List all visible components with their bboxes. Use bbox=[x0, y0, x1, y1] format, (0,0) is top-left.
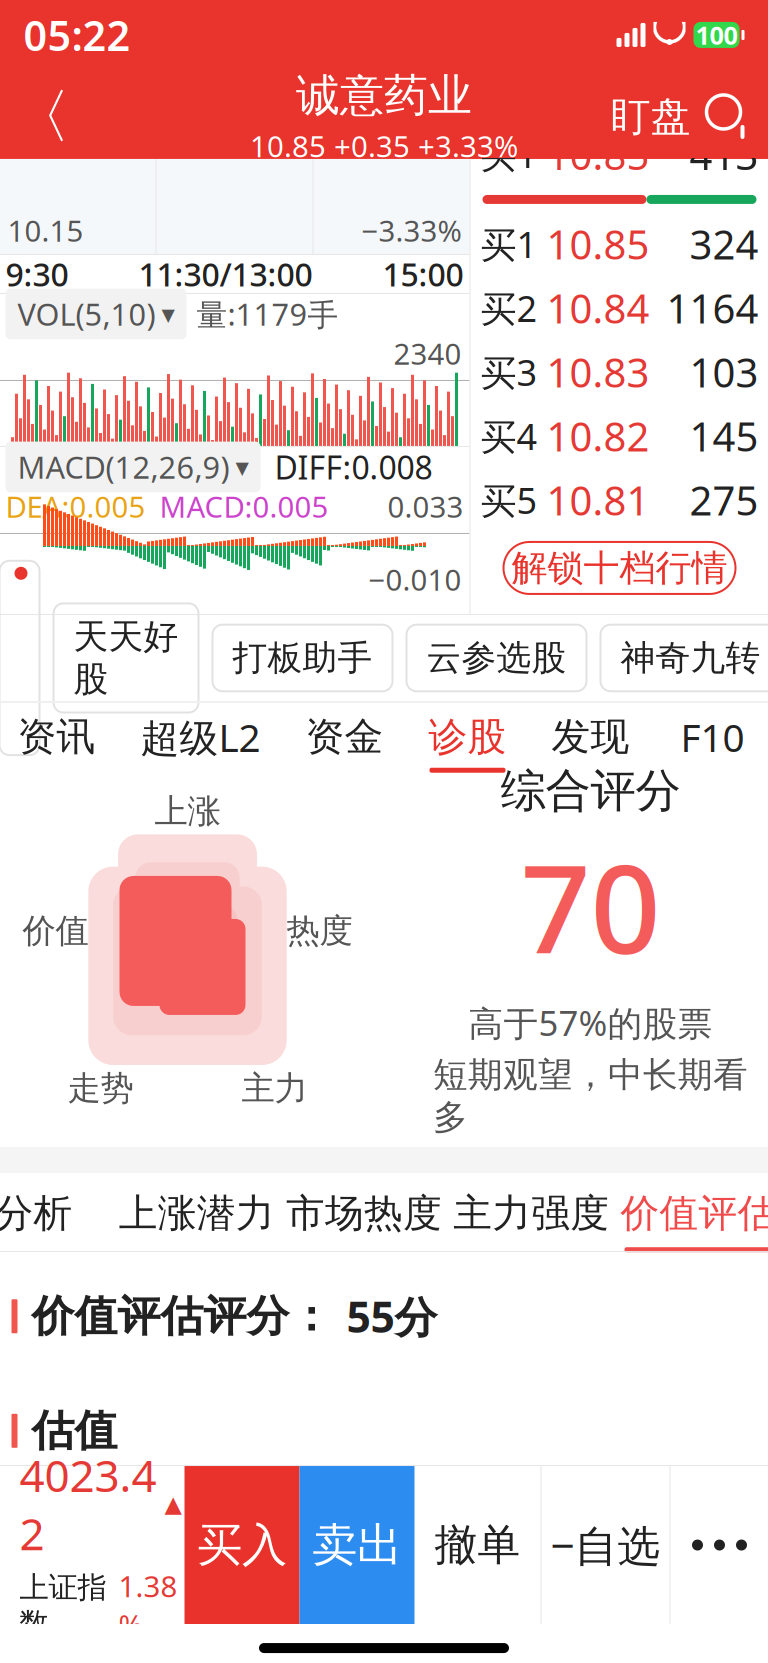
staticText: 10.15 bbox=[7, 211, 83, 250]
button[interactable]: 神奇九转 bbox=[600, 625, 768, 691]
staticText: ▾ bbox=[235, 452, 248, 482]
button[interactable]: 买入 bbox=[184, 1466, 299, 1624]
button[interactable]: 神奇色阶 bbox=[0, 561, 39, 755]
staticText: ▾ bbox=[161, 299, 174, 329]
staticText: 2340 bbox=[393, 334, 461, 373]
staticText: 解锁十档行情 bbox=[511, 546, 727, 590]
staticText: 综合评分 bbox=[500, 763, 680, 819]
staticText: 10.82 bbox=[546, 409, 649, 462]
staticText: 价值评估 bbox=[620, 1190, 768, 1237]
staticText: 10.83 bbox=[546, 345, 649, 398]
staticText: 走势 bbox=[67, 1068, 133, 1109]
button[interactable]: 4023.42 bbox=[0, 1466, 184, 1624]
staticText: MACD:0.005 bbox=[159, 487, 328, 526]
button[interactable]: 打板助手 bbox=[212, 625, 392, 691]
button[interactable]: 价值评估 bbox=[620, 1173, 768, 1251]
button[interactable]: MACD(12,26,9) bbox=[5, 442, 260, 492]
staticText: 热度 bbox=[286, 910, 352, 951]
staticText: 买1 bbox=[480, 220, 537, 268]
staticText: 4023.42 bbox=[19, 1446, 156, 1562]
staticText: 卖出 bbox=[312, 1517, 402, 1573]
staticText: 发现 bbox=[551, 713, 629, 761]
staticText: 0.033 bbox=[387, 487, 463, 526]
staticText: F10 bbox=[680, 711, 744, 763]
staticText: 打板助手 bbox=[232, 637, 372, 679]
staticText: VOL(5,10) bbox=[17, 294, 155, 334]
staticText: −0.010 bbox=[368, 560, 461, 599]
staticText: 买5 bbox=[480, 476, 537, 524]
staticText: 天天好股 bbox=[73, 615, 178, 701]
staticText: 买4 bbox=[480, 412, 537, 460]
button[interactable]: VOL(5,10) bbox=[5, 289, 186, 339]
button[interactable]: 分析 bbox=[0, 1173, 107, 1251]
staticText: 413 bbox=[689, 128, 758, 181]
button[interactable]: 资讯 bbox=[17, 707, 95, 779]
staticText: 盯盘 bbox=[610, 92, 690, 141]
staticText: 10.84 bbox=[546, 281, 649, 334]
staticText: 10.85 bbox=[546, 128, 649, 181]
staticText: 主力 bbox=[241, 1068, 307, 1109]
staticText: 诚意药业 bbox=[296, 68, 472, 122]
staticText: 9:30 bbox=[5, 253, 68, 295]
button[interactable]: 返回 bbox=[1, 79, 81, 155]
staticText: 1164 bbox=[666, 281, 758, 334]
staticText: 诊股 bbox=[428, 713, 506, 761]
staticText: 05:22 bbox=[23, 7, 130, 62]
staticText: 高于57%的股票 bbox=[468, 1000, 712, 1046]
staticText: 10.85 +0.35 +3.33% bbox=[250, 126, 518, 165]
button[interactable]: 撤单 bbox=[414, 1466, 540, 1624]
staticText: 分析 bbox=[0, 1190, 72, 1237]
button[interactable]: 卖出 bbox=[299, 1466, 414, 1624]
staticText: ▲ bbox=[164, 1491, 181, 1517]
staticText: 324 bbox=[689, 217, 758, 270]
staticText: 价值 bbox=[22, 910, 88, 951]
staticText: 超级L2 bbox=[140, 711, 260, 763]
staticText: 1.38% bbox=[118, 1566, 177, 1644]
staticText: 市场热度 bbox=[286, 1190, 442, 1237]
button[interactable]: 天天好股 bbox=[53, 603, 198, 713]
staticText: 275 bbox=[689, 473, 758, 526]
button[interactable]: 更多 bbox=[670, 1466, 768, 1624]
staticText: 10.85 bbox=[546, 217, 649, 270]
button[interactable]: 市场热度 bbox=[286, 1173, 442, 1251]
button[interactable]: 发现 bbox=[551, 707, 629, 779]
staticText: 上涨潜力 bbox=[119, 1190, 275, 1237]
staticText: 11:30/13:00 bbox=[138, 253, 312, 295]
staticText: 价值评估评分： bbox=[31, 1290, 332, 1342]
button[interactable]: 超级L2 bbox=[140, 707, 260, 779]
staticText: 云参选股 bbox=[426, 637, 566, 679]
staticText: 15:00 bbox=[382, 253, 463, 295]
staticText: 〈 bbox=[12, 81, 71, 153]
staticText: 10.81 bbox=[546, 473, 649, 526]
staticText: 上证指数 bbox=[19, 1569, 106, 1641]
staticText: −自选 bbox=[550, 1517, 660, 1573]
staticText: 70 bbox=[520, 825, 660, 988]
staticText: 撤单 bbox=[434, 1519, 520, 1571]
button[interactable]: 盯盘 bbox=[610, 79, 690, 155]
button[interactable]: 解锁十档行情 bbox=[503, 542, 735, 594]
staticText: DIFF:0.008 bbox=[274, 446, 432, 488]
staticText: 神奇九转 bbox=[620, 637, 760, 679]
staticText: −3.33% bbox=[361, 211, 461, 250]
staticText: 买2 bbox=[480, 284, 537, 332]
staticText: 100 bbox=[695, 18, 737, 52]
button[interactable]: 诊股 bbox=[428, 707, 506, 779]
staticText: 主力强度 bbox=[453, 1190, 609, 1237]
staticText: 103 bbox=[689, 345, 758, 398]
staticText: MACD(12,26,9) bbox=[17, 447, 229, 487]
staticText: 上涨 bbox=[154, 791, 220, 832]
staticText: 量:1179手 bbox=[196, 294, 338, 334]
button[interactable]: 云参选股 bbox=[406, 625, 586, 691]
button[interactable]: 上涨潜力 bbox=[119, 1173, 275, 1251]
button[interactable]: 资金 bbox=[305, 707, 383, 779]
button[interactable]: 搜索 bbox=[690, 79, 766, 155]
staticText: 买3 bbox=[480, 348, 537, 396]
staticText: DEA:0.005 bbox=[5, 487, 145, 526]
button[interactable]: F10 bbox=[674, 707, 750, 779]
staticText: 145 bbox=[689, 409, 758, 462]
staticText: 买1 bbox=[480, 130, 537, 178]
staticText: 资金 bbox=[305, 713, 383, 761]
button[interactable]: −自选 bbox=[541, 1466, 669, 1624]
staticText: 买入 bbox=[197, 1517, 287, 1573]
button[interactable]: 主力强度 bbox=[453, 1173, 609, 1251]
